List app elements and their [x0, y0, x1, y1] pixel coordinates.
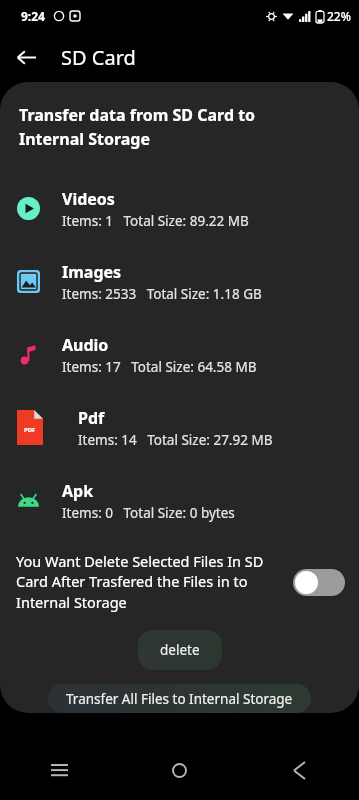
button[interactable]: Back [8, 39, 44, 75]
button[interactable]: Images [0, 245, 359, 318]
staticText: Transfer data from SD Card to Internal S… [19, 104, 303, 150]
button[interactable]: Audio [0, 318, 359, 391]
staticText: PDF [24, 426, 36, 434]
staticText: Items: 0 Total Size: 0 bytes [62, 504, 235, 522]
button[interactable]: Transfer All Files to Internal Storage [48, 684, 311, 713]
staticText: Items: 2533 Total Size: 1.18 GB [62, 285, 262, 303]
button[interactable]: Videos [0, 172, 359, 245]
staticText: You Want Delete Selected Files In SD Car… [16, 551, 285, 613]
staticText: Pdf [78, 407, 105, 429]
button[interactable]: delete [138, 630, 222, 670]
button[interactable]: Back [239, 740, 359, 800]
staticText: Transfer All Files to Internal Storage [66, 690, 293, 708]
staticText: 9:24 [21, 8, 45, 24]
button[interactable]: Apk [0, 464, 359, 537]
button[interactable]: PDF [0, 391, 359, 464]
staticText: delete [160, 641, 200, 659]
staticText: Images [62, 261, 122, 283]
staticText: Items: 14 Total Size: 27.92 MB [78, 431, 273, 449]
staticText: Items: 17 Total Size: 64.58 MB [62, 358, 257, 376]
button[interactable]: Home [119, 740, 239, 800]
staticText: SD Card [61, 44, 136, 71]
staticText: 22% [327, 8, 351, 24]
button[interactable]: Recents [0, 740, 119, 800]
staticText: Apk [62, 480, 94, 502]
staticText: Videos [62, 188, 115, 210]
staticText: Audio [62, 334, 109, 356]
button[interactable]: Delete after transfer toggle [293, 569, 345, 596]
staticText: Items: 1 Total Size: 89.22 MB [62, 212, 249, 230]
